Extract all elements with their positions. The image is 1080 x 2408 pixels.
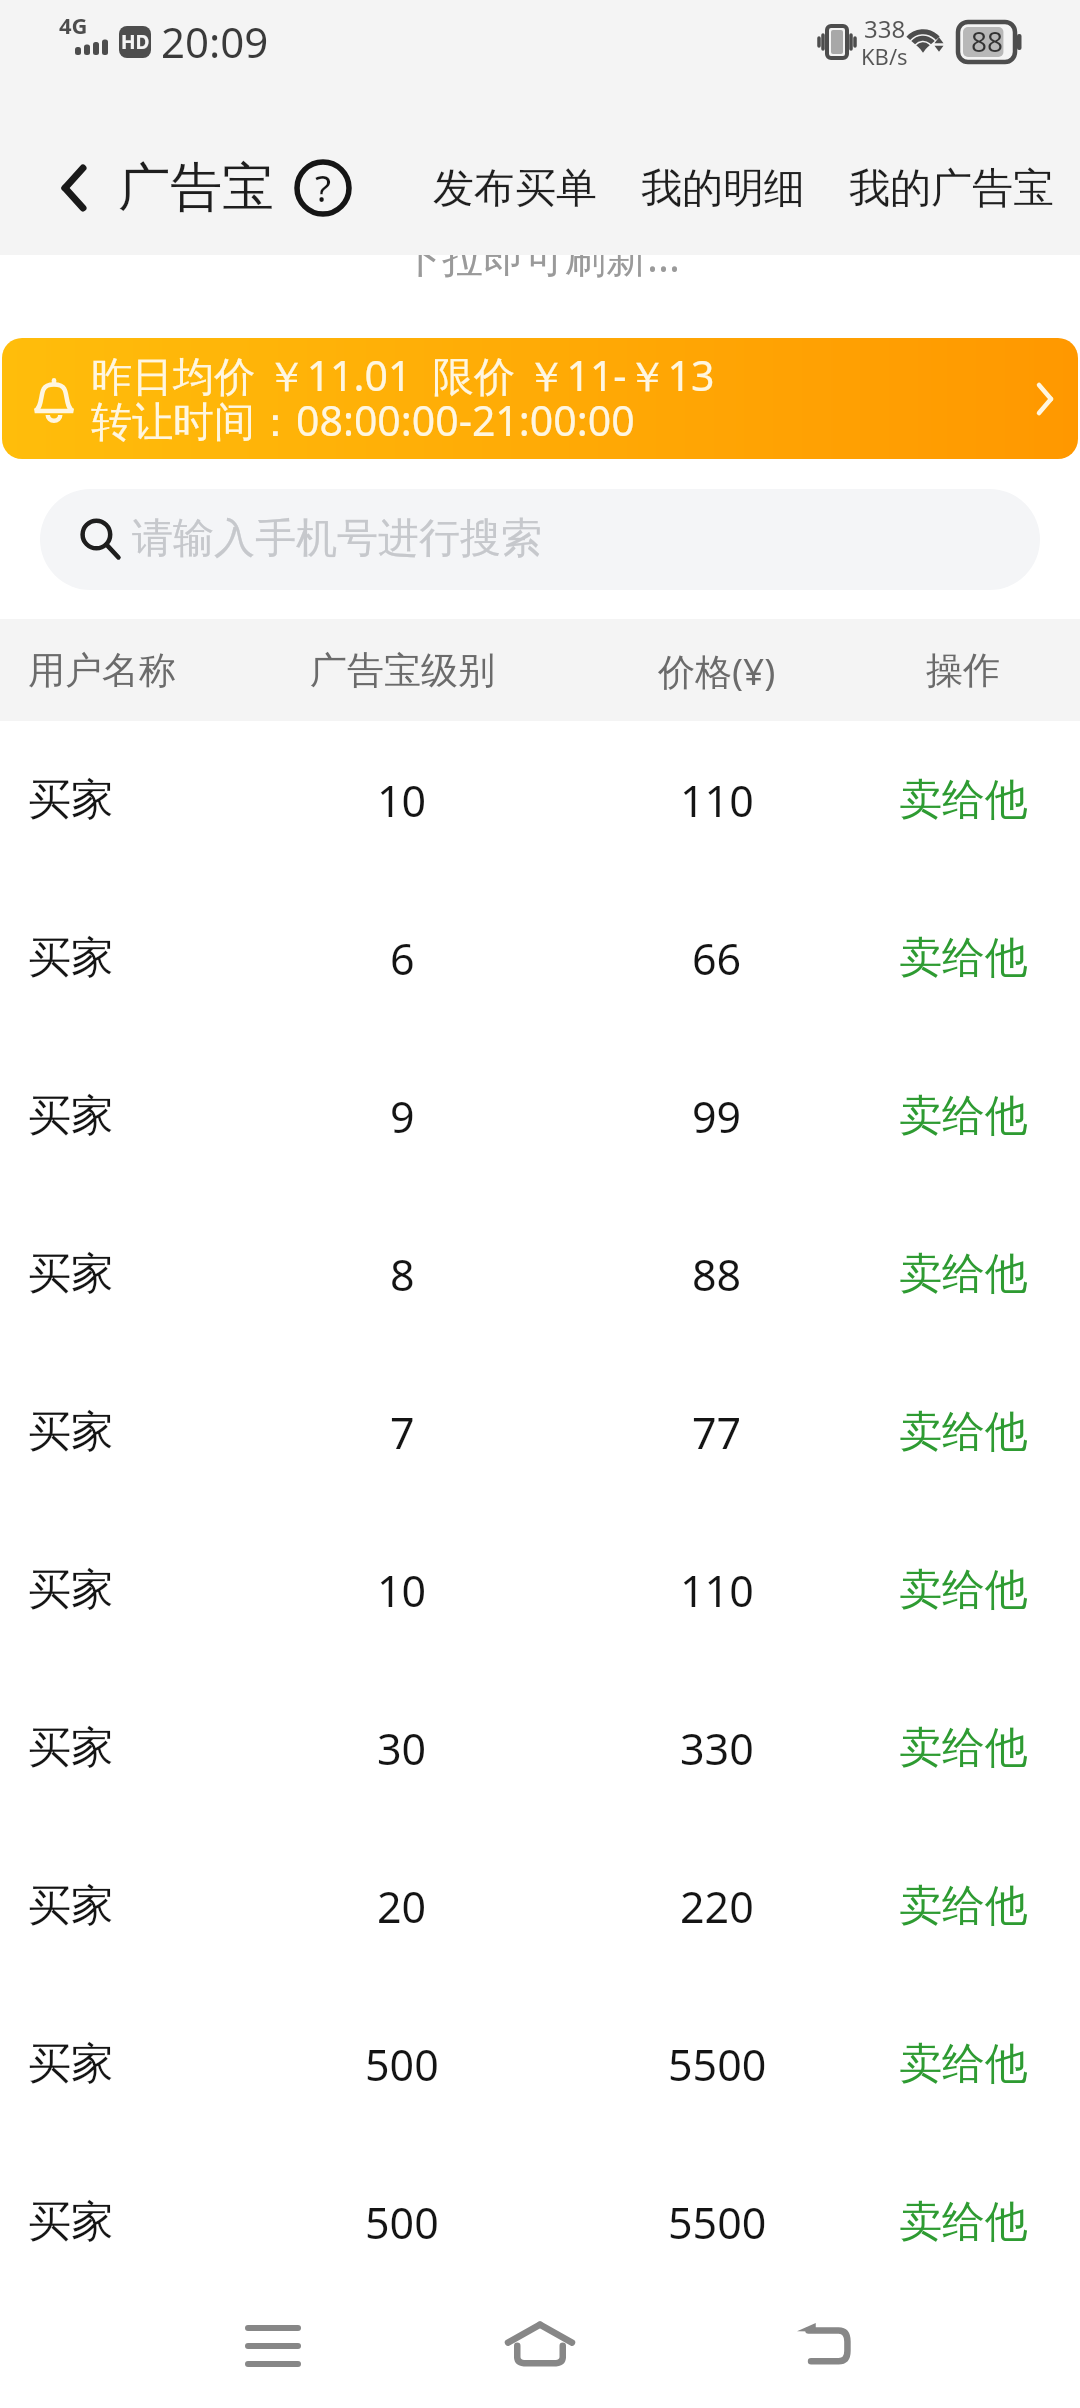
staticText: 广告宝	[118, 155, 274, 221]
button[interactable]: 昨日均价 ￥11.01 限价 ￥11-￥13	[2, 338, 1078, 459]
staticText: 77	[692, 1403, 742, 1462]
staticText: ?	[315, 162, 332, 212]
staticText: 卖给他	[899, 2037, 1028, 2091]
button[interactable]: Home	[480, 2290, 600, 2398]
button[interactable]: 发布买单	[411, 145, 619, 233]
staticText: 4G	[59, 10, 88, 40]
staticText: 买家	[28, 1879, 114, 1933]
button[interactable]: 买家	[0, 1827, 1080, 1985]
button[interactable]: 我的明细	[619, 145, 827, 233]
staticText: 110	[680, 1561, 754, 1620]
staticText: 价格(¥)	[658, 645, 776, 696]
staticText: 卖给他	[899, 773, 1028, 827]
staticText: 88	[692, 1245, 742, 1304]
button[interactable]: Back	[763, 2283, 883, 2403]
staticText: 30	[377, 1719, 427, 1778]
staticText: 我的广告宝	[849, 163, 1054, 215]
staticText: 买家	[28, 1721, 114, 1775]
staticText: 请输入手机号进行搜索	[132, 513, 542, 565]
staticText: 110	[680, 771, 754, 830]
staticText: 5500	[668, 2035, 767, 2094]
staticText: 买家	[28, 1563, 114, 1617]
staticText: 10	[377, 1561, 427, 1620]
staticText: 88	[971, 22, 1004, 60]
staticText: 我的明细	[641, 163, 805, 215]
staticText: 转让时间：08:00:00-21:00:00	[91, 392, 635, 448]
staticText: 5500	[668, 2193, 767, 2252]
staticText: 220	[680, 1877, 754, 1936]
button[interactable]: 我的广告宝	[827, 145, 1076, 233]
staticText: 99	[692, 1087, 742, 1146]
staticText: 发布买单	[433, 163, 597, 215]
staticText: 500	[365, 2193, 439, 2252]
staticText: 66	[692, 929, 742, 988]
staticText: 10	[377, 771, 427, 830]
staticText: 买家	[28, 1247, 114, 1301]
button[interactable]: 买家	[0, 1669, 1080, 1827]
button[interactable]: 买家	[0, 1353, 1080, 1511]
staticText: 卖给他	[899, 931, 1028, 985]
staticText: 买家	[28, 2037, 114, 2091]
staticText: 卖给他	[899, 1089, 1028, 1143]
button[interactable]: 请输入手机号进行搜索	[40, 489, 1040, 590]
button[interactable]: 买家	[0, 721, 1080, 879]
button[interactable]: 买家	[0, 1985, 1080, 2143]
staticText: 卖给他	[899, 1247, 1028, 1301]
staticText: 买家	[28, 931, 114, 985]
button[interactable]: Back	[24, 140, 124, 236]
staticText: HD	[121, 29, 150, 55]
staticText: 9	[390, 1087, 415, 1146]
staticText: 买家	[28, 773, 114, 827]
button[interactable]: 买家	[0, 1511, 1080, 1669]
staticText: 用户名称	[28, 647, 176, 694]
staticText: 操作	[926, 647, 1000, 694]
staticText: 卖给他	[899, 2195, 1028, 2249]
staticText: 卖给他	[899, 1405, 1028, 1459]
staticText: 下拉即可刷新...	[401, 228, 680, 284]
button[interactable]: Recent apps	[213, 2285, 333, 2405]
staticText: 卖给他	[899, 1721, 1028, 1775]
staticText: 20	[377, 1877, 427, 1936]
staticText: 8	[390, 1245, 415, 1304]
button[interactable]: 买家	[0, 2143, 1080, 2301]
staticText: 买家	[28, 1405, 114, 1459]
staticText: 卖给他	[899, 1879, 1028, 1933]
staticText: 昨日均价 ￥11.01 限价 ￥11-￥13	[91, 347, 715, 403]
staticText: 广告宝级别	[310, 647, 495, 694]
staticText: 338	[864, 12, 906, 45]
staticText: 买家	[28, 1089, 114, 1143]
button[interactable]: 买家	[0, 879, 1080, 1037]
staticText: KB/s	[861, 41, 908, 71]
button[interactable]: 买家	[0, 1037, 1080, 1195]
staticText: 500	[365, 2035, 439, 2094]
staticText: 20:09	[161, 13, 269, 70]
staticText: 330	[680, 1719, 754, 1778]
staticText: 卖给他	[899, 1563, 1028, 1617]
staticText: 买家	[28, 2195, 114, 2249]
button[interactable]: Help	[287, 152, 359, 224]
button[interactable]: 买家	[0, 1195, 1080, 1353]
staticText: 6	[390, 929, 415, 988]
staticText: 7	[390, 1403, 415, 1462]
